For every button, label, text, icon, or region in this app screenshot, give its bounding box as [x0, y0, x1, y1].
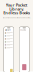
staticText: Reading: [20, 29, 26, 31]
staticText: Library: [5, 29, 11, 31]
staticText: Discover, read and collect your favourit…: [2, 17, 30, 19]
staticText: Your Pocket Library, Endless Books: [3, 2, 30, 15]
